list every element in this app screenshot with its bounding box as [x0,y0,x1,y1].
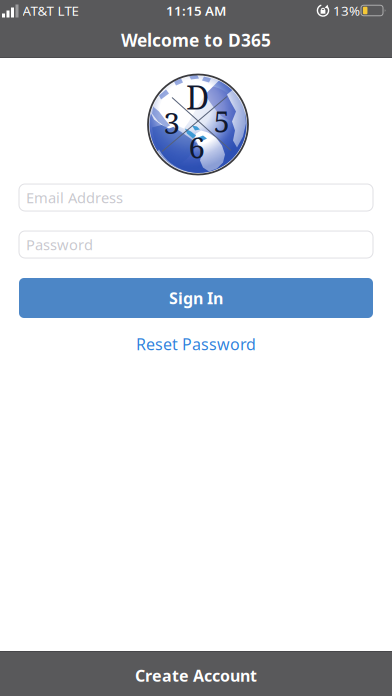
staticText: Create Account [135,665,257,686]
staticText: 3 [163,102,179,142]
staticText: 11:15 AM [166,2,226,19]
staticText: Reset Password [136,333,256,355]
textField[interactable]: Password [19,231,373,258]
staticText: Welcome to D365 [121,28,271,51]
staticText: D [186,75,209,119]
button[interactable]: Create Account [0,651,392,696]
button[interactable]: Sign In [19,278,373,318]
staticText: LTE [57,2,78,19]
textField[interactable]: Email Address [19,184,373,211]
staticText: AT&T [22,2,53,19]
staticText: Email Address [26,188,123,207]
staticText: 13% [333,2,360,19]
staticText: 6 [188,127,204,167]
staticText: 5 [213,101,229,141]
staticText: Password [26,235,93,254]
staticText: Sign In [169,287,223,309]
button[interactable]: Reset Password [136,333,256,355]
